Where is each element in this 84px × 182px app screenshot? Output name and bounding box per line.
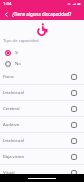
staticText: Intelectual [3, 90, 71, 96]
button[interactable]: Cerebral [0, 101, 84, 116]
button[interactable]: Intelectual [0, 85, 84, 100]
button[interactable]: Si [0, 47, 84, 58]
staticText: ¿Tiene alguna discapacidad? [12, 11, 72, 17]
button[interactable]: Back [0, 8, 12, 20]
staticText: Fisica [3, 74, 71, 80]
staticText: Tipo de capacidad [3, 38, 39, 44]
staticText: No [15, 61, 21, 67]
staticText: Intelectual [3, 138, 71, 144]
button[interactable]: Fisica [0, 69, 84, 84]
button[interactable]: No [0, 58, 84, 69]
staticText: Visual [3, 170, 71, 176]
staticText: Baja vision [3, 154, 71, 160]
staticText: 1:34 [3, 1, 12, 7]
button[interactable]: Intelectual [0, 133, 84, 148]
button[interactable]: Baja vision [0, 149, 84, 164]
staticText: Si [15, 50, 19, 56]
button[interactable]: Visual [0, 165, 84, 180]
staticText: Cerebral [3, 106, 71, 112]
button[interactable]: Auditiva [0, 117, 84, 132]
staticText: Auditiva [3, 122, 71, 128]
